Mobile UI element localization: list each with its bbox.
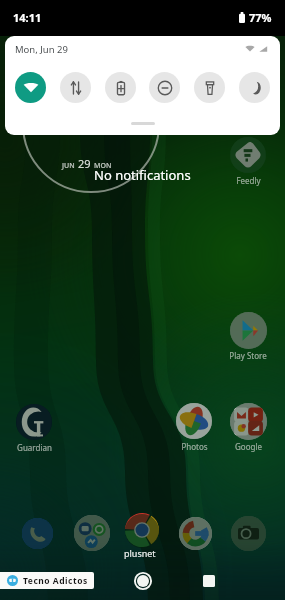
- button[interactable]: Google: [224, 402, 272, 452]
- staticText: 77%: [249, 10, 272, 25]
- button[interactable]: Do not disturb: [149, 72, 180, 103]
- button[interactable]: Home: [129, 567, 156, 594]
- staticText: JUN: [62, 161, 75, 171]
- button[interactable]: Play Store: [224, 311, 272, 361]
- staticText: Play Store: [229, 350, 267, 361]
- staticText: 29: [78, 156, 91, 171]
- button[interactable]: Battery saver: [105, 72, 136, 103]
- button[interactable]: Recent apps: [195, 567, 222, 594]
- staticText: Tecno Adictos: [23, 575, 88, 587]
- button[interactable]: Camera: [229, 514, 267, 552]
- button[interactable]: Feedly: [224, 136, 272, 186]
- button[interactable]: Chrome: [123, 512, 161, 550]
- button[interactable]: Mobile data: [60, 72, 91, 103]
- staticText: Guardian: [17, 442, 52, 453]
- button[interactable]: Flashlight: [194, 72, 225, 103]
- staticText: plusnet: [124, 547, 156, 559]
- button[interactable]: Messaging: [73, 514, 111, 552]
- staticText: Google: [235, 441, 262, 452]
- staticText: Feedly: [236, 175, 261, 186]
- button[interactable]: Google Search: [176, 514, 214, 552]
- button[interactable]: Phone: [18, 514, 56, 552]
- staticText: 14:11: [13, 10, 42, 25]
- staticText: Photos: [181, 441, 208, 452]
- button[interactable]: Guardian: [10, 403, 58, 453]
- staticText: No notifications: [94, 166, 191, 184]
- button[interactable]: Dark theme: [239, 72, 270, 103]
- staticText: Mon, Jun 29: [15, 43, 68, 56]
- button[interactable]: Photos: [170, 402, 218, 452]
- staticText: MON: [94, 161, 112, 171]
- button[interactable]: Wi-Fi: [15, 72, 46, 103]
